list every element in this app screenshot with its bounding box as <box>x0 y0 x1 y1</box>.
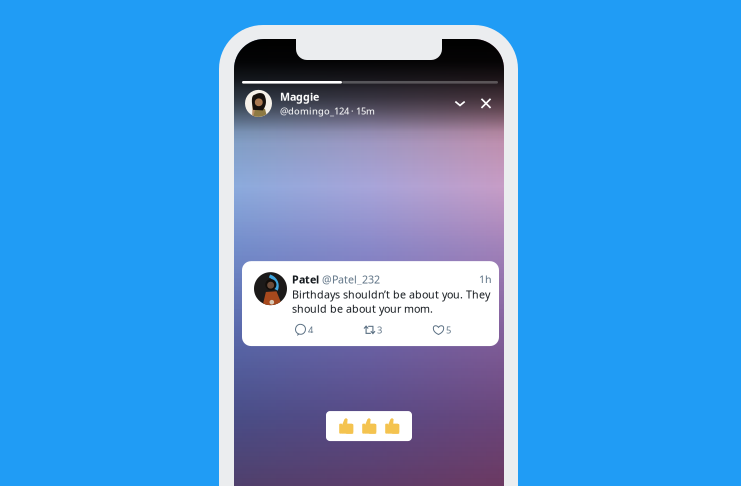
staticText: 4 <box>308 324 313 336</box>
staticText: 5 <box>446 324 451 336</box>
staticText: @Patel_232 <box>322 272 380 286</box>
staticText: 1h <box>479 272 492 286</box>
button[interactable]: More options <box>450 93 470 113</box>
button[interactable]: Close <box>476 93 496 113</box>
button[interactable]: Like, 5 likes <box>433 324 451 336</box>
staticText: @domingo_124 · 15m <box>280 105 375 117</box>
button[interactable]: Send thumbs up reaction <box>326 411 412 441</box>
staticText: Birthdays shouldn’t be about you. They s… <box>292 287 490 316</box>
staticText: Maggie <box>280 90 319 104</box>
staticText: 3 <box>377 324 382 336</box>
button[interactable]: Reply, 4 replies <box>295 324 313 336</box>
staticText: Patel <box>292 272 322 286</box>
button[interactable]: Retweet, 3 retweets <box>364 324 382 336</box>
